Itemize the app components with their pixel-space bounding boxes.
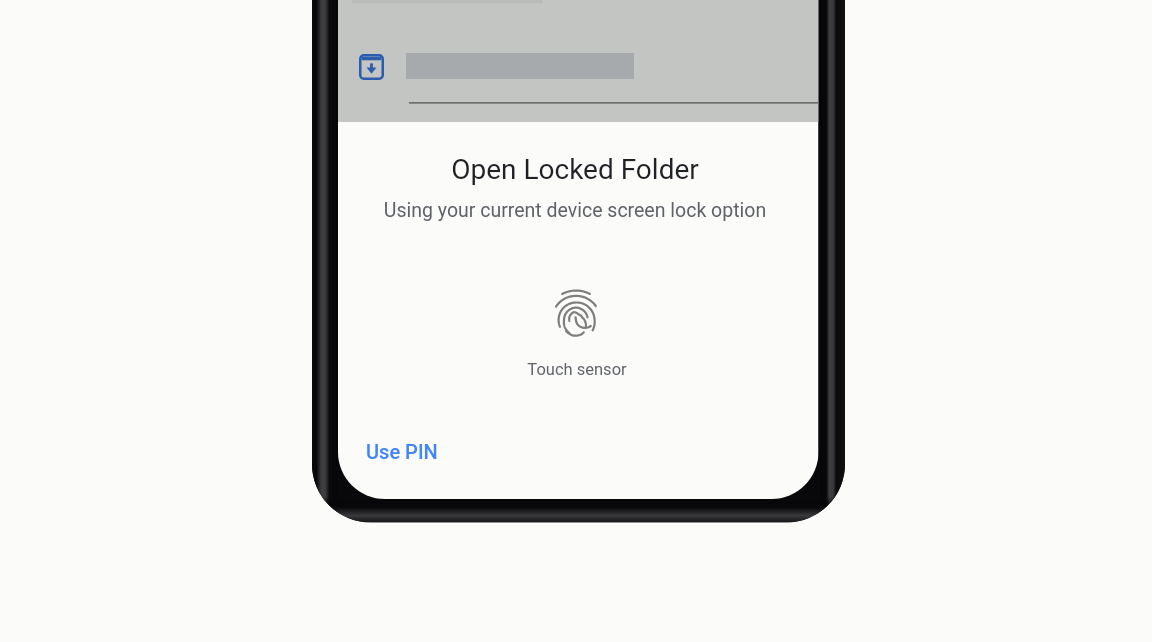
staticText: Use PIN <box>366 440 438 463</box>
staticText: Using your current device screen lock op… <box>335 199 815 222</box>
button[interactable]: Use PIN <box>352 432 452 471</box>
button[interactable]: Touch fingerprint sensor <box>556 289 596 337</box>
staticText: Open Locked Folder <box>335 153 815 186</box>
button[interactable]: Move to Locked Folder <box>338 37 818 97</box>
staticText: Touch sensor <box>337 360 817 379</box>
